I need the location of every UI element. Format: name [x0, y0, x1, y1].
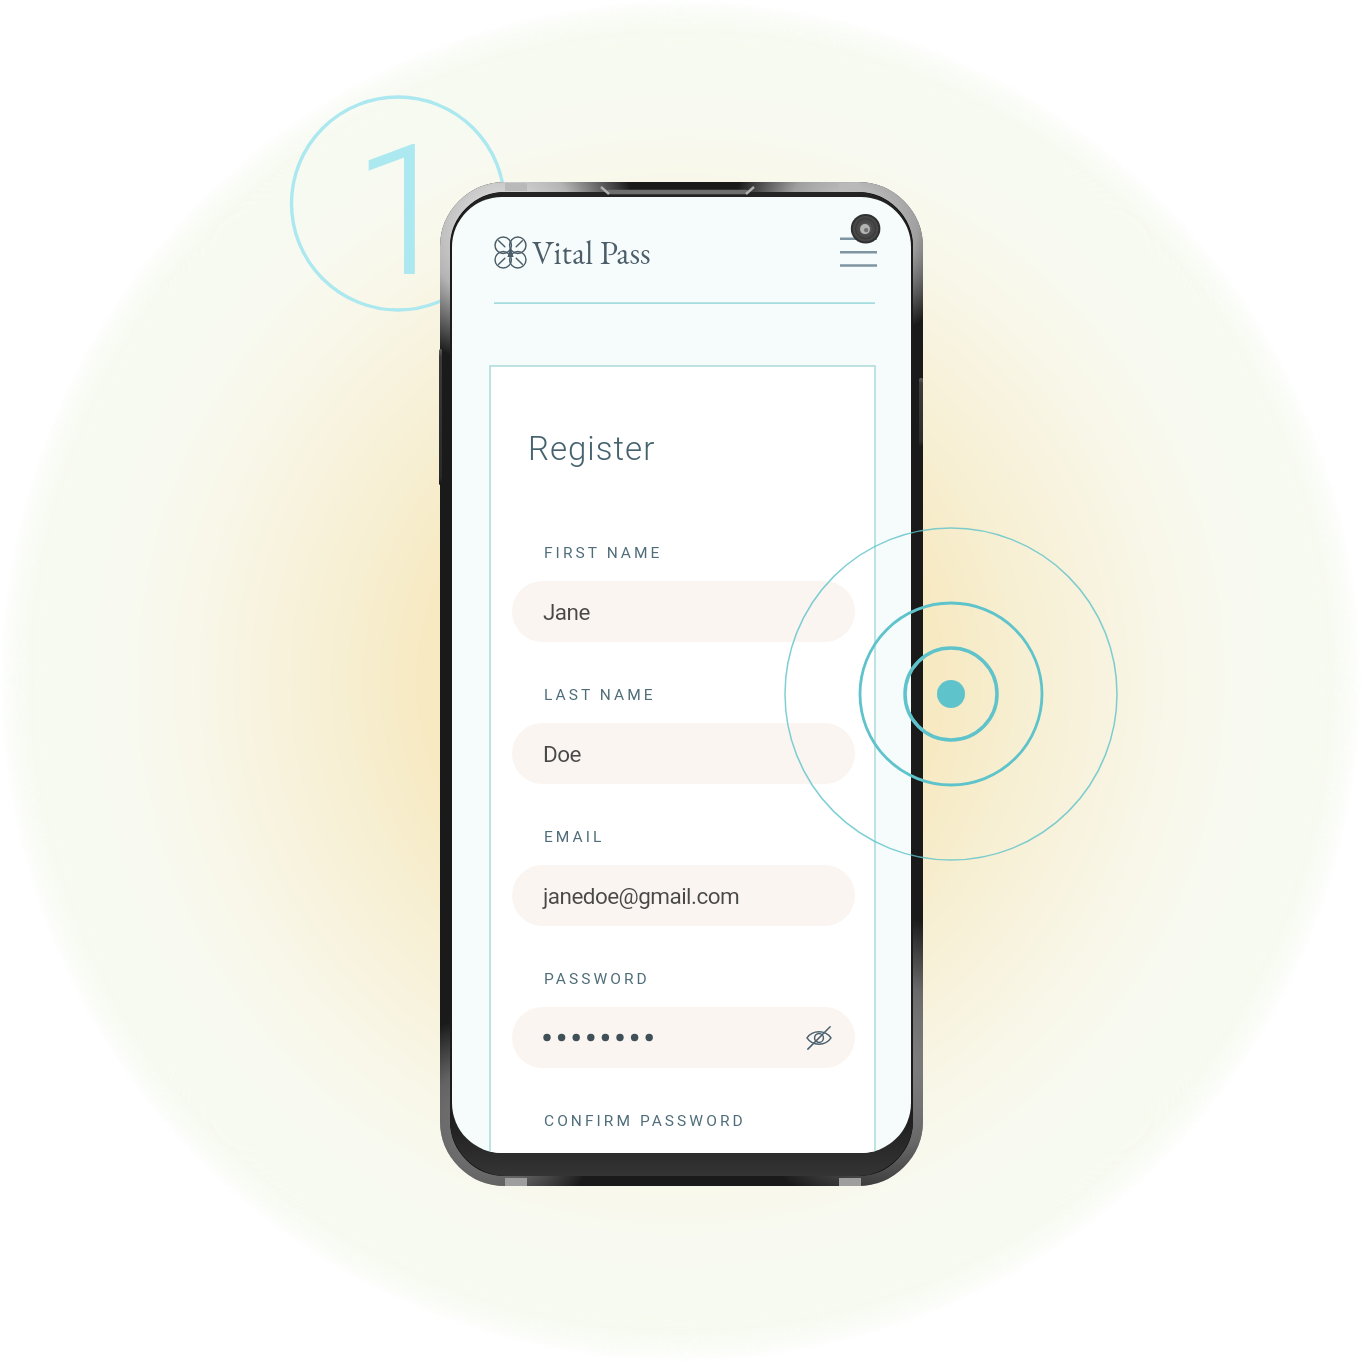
staticText: Doe [543, 741, 581, 767]
staticText: EMAIL [544, 828, 605, 846]
staticText: janedoe@gmail.com [543, 883, 740, 909]
button[interactable]: Jane [512, 581, 855, 642]
staticText: LAST NAME [544, 686, 656, 704]
button[interactable]: Show password [512, 1007, 855, 1068]
button[interactable]: janedoe@gmail.com [512, 865, 855, 926]
staticText: PASSWORD [544, 970, 650, 988]
staticText: Jane [543, 599, 590, 625]
button[interactable]: Doe [512, 723, 855, 784]
staticText: 1 [353, 105, 454, 318]
button[interactable]: Show password [804, 1023, 834, 1053]
button[interactable]: Menu [840, 231, 877, 265]
staticText: FIRST NAME [544, 544, 663, 562]
staticText: CONFIRM PASSWORD [544, 1112, 746, 1130]
staticText: Vital Pass [532, 231, 651, 274]
staticText: Register [528, 429, 656, 468]
